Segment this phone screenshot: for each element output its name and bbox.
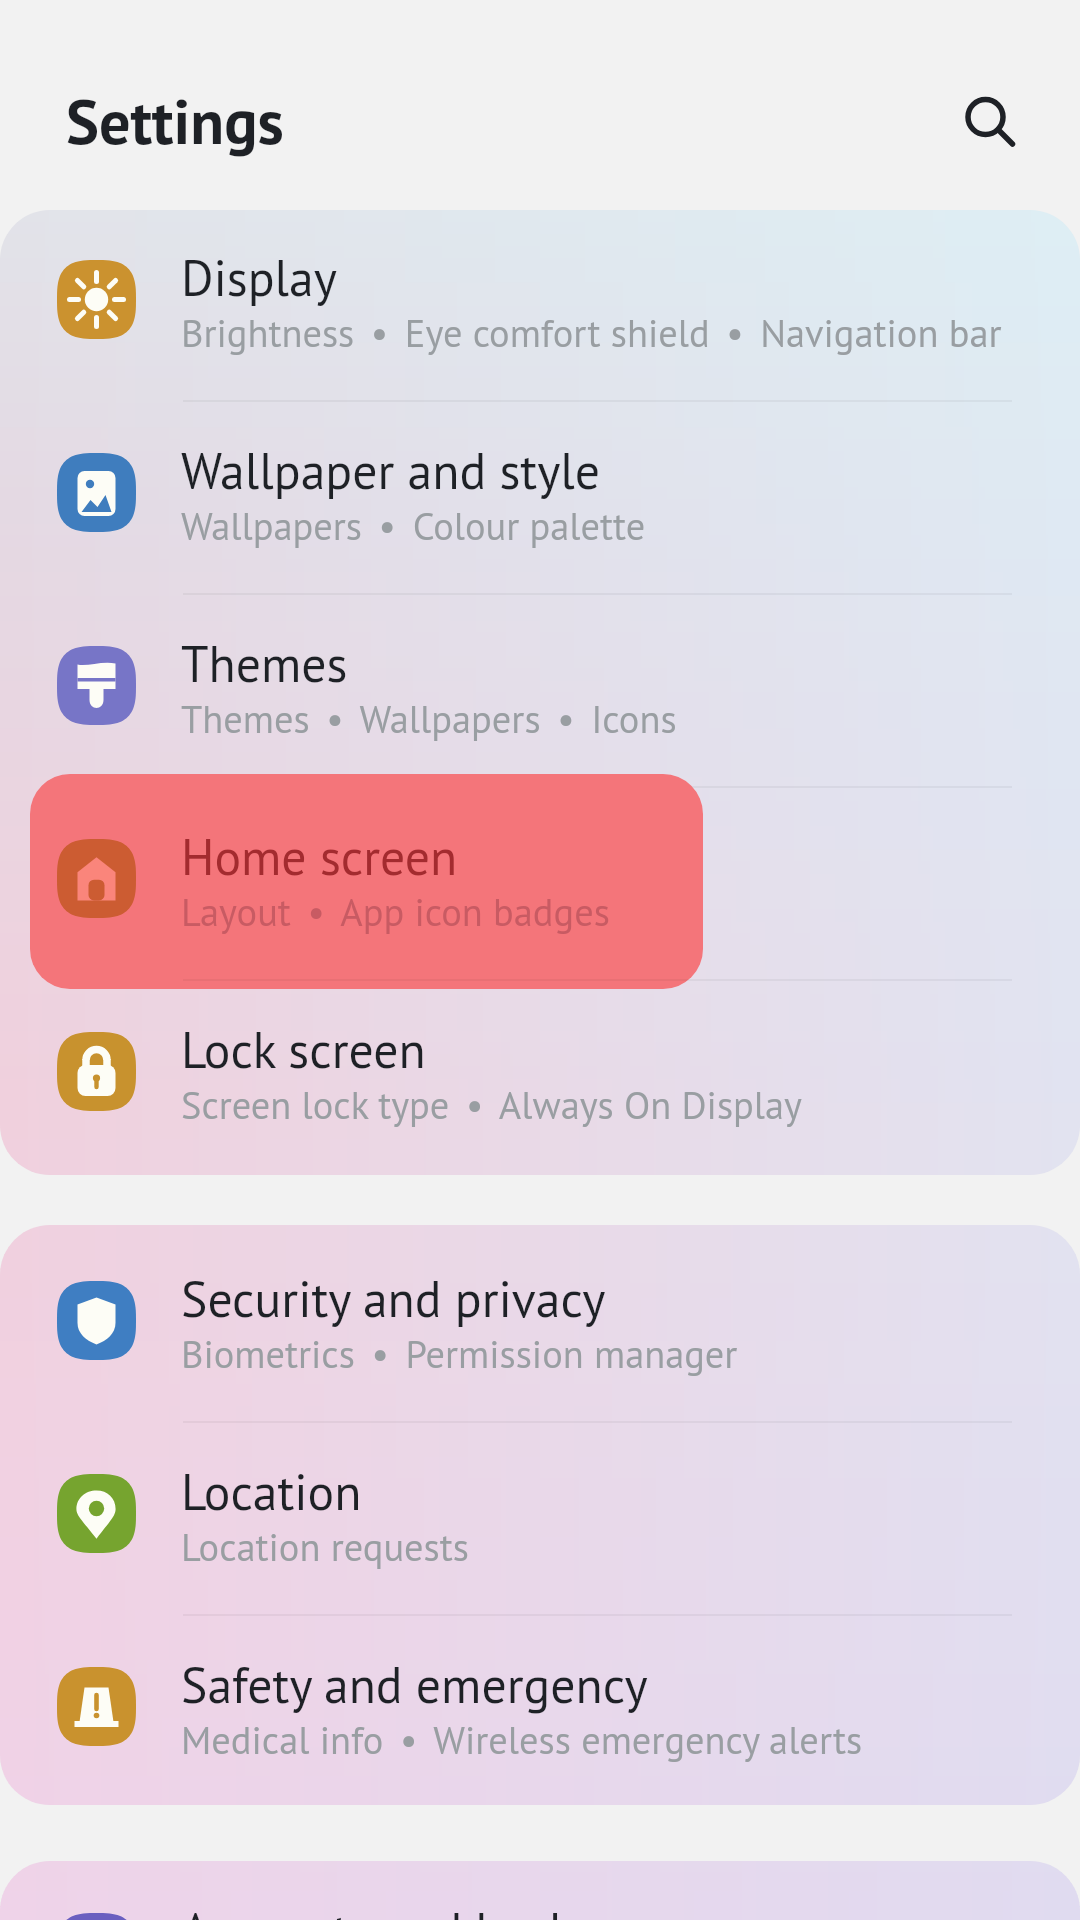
staticText: Safety and emergency bbox=[181, 1652, 648, 1716]
staticText: Medical info • Wireless emergency alerts bbox=[181, 1715, 863, 1765]
button[interactable]: Search bbox=[930, 62, 1042, 174]
button[interactable]: Home screen bbox=[0, 789, 1080, 982]
staticText: Themes • Wallpapers • Icons bbox=[181, 694, 677, 744]
button[interactable]: Security and privacy bbox=[0, 1231, 1080, 1424]
button[interactable]: Accounts and backup bbox=[0, 1863, 1080, 1920]
button[interactable]: Lock screen bbox=[0, 982, 1080, 1175]
staticText: Layout • App icon badges bbox=[181, 887, 610, 937]
staticText: Home screen bbox=[181, 824, 458, 888]
staticText: Themes bbox=[181, 631, 348, 695]
button[interactable]: Safety and emergency bbox=[0, 1617, 1080, 1805]
staticText: Brightness • Eye comfort shield • Naviga… bbox=[181, 308, 1002, 358]
staticText: Security and privacy bbox=[181, 1266, 606, 1330]
staticText: Wallpaper and style bbox=[181, 438, 601, 502]
button[interactable]: Wallpaper and style bbox=[0, 403, 1080, 596]
staticText: Biometrics • Permission manager bbox=[181, 1329, 738, 1379]
staticText: Wallpapers • Colour palette bbox=[181, 501, 646, 551]
staticText: Accounts and backup bbox=[181, 1898, 627, 1920]
staticText: Location bbox=[181, 1459, 362, 1523]
button[interactable]: Location bbox=[0, 1424, 1080, 1617]
staticText: Display bbox=[181, 245, 337, 309]
button[interactable]: Themes bbox=[0, 596, 1080, 789]
staticText: Settings bbox=[66, 81, 284, 161]
button[interactable]: Display bbox=[0, 210, 1080, 403]
staticText: Lock screen bbox=[181, 1017, 426, 1081]
staticText: Screen lock type • Always On Display bbox=[181, 1080, 802, 1130]
staticText: Location requests bbox=[181, 1522, 469, 1572]
